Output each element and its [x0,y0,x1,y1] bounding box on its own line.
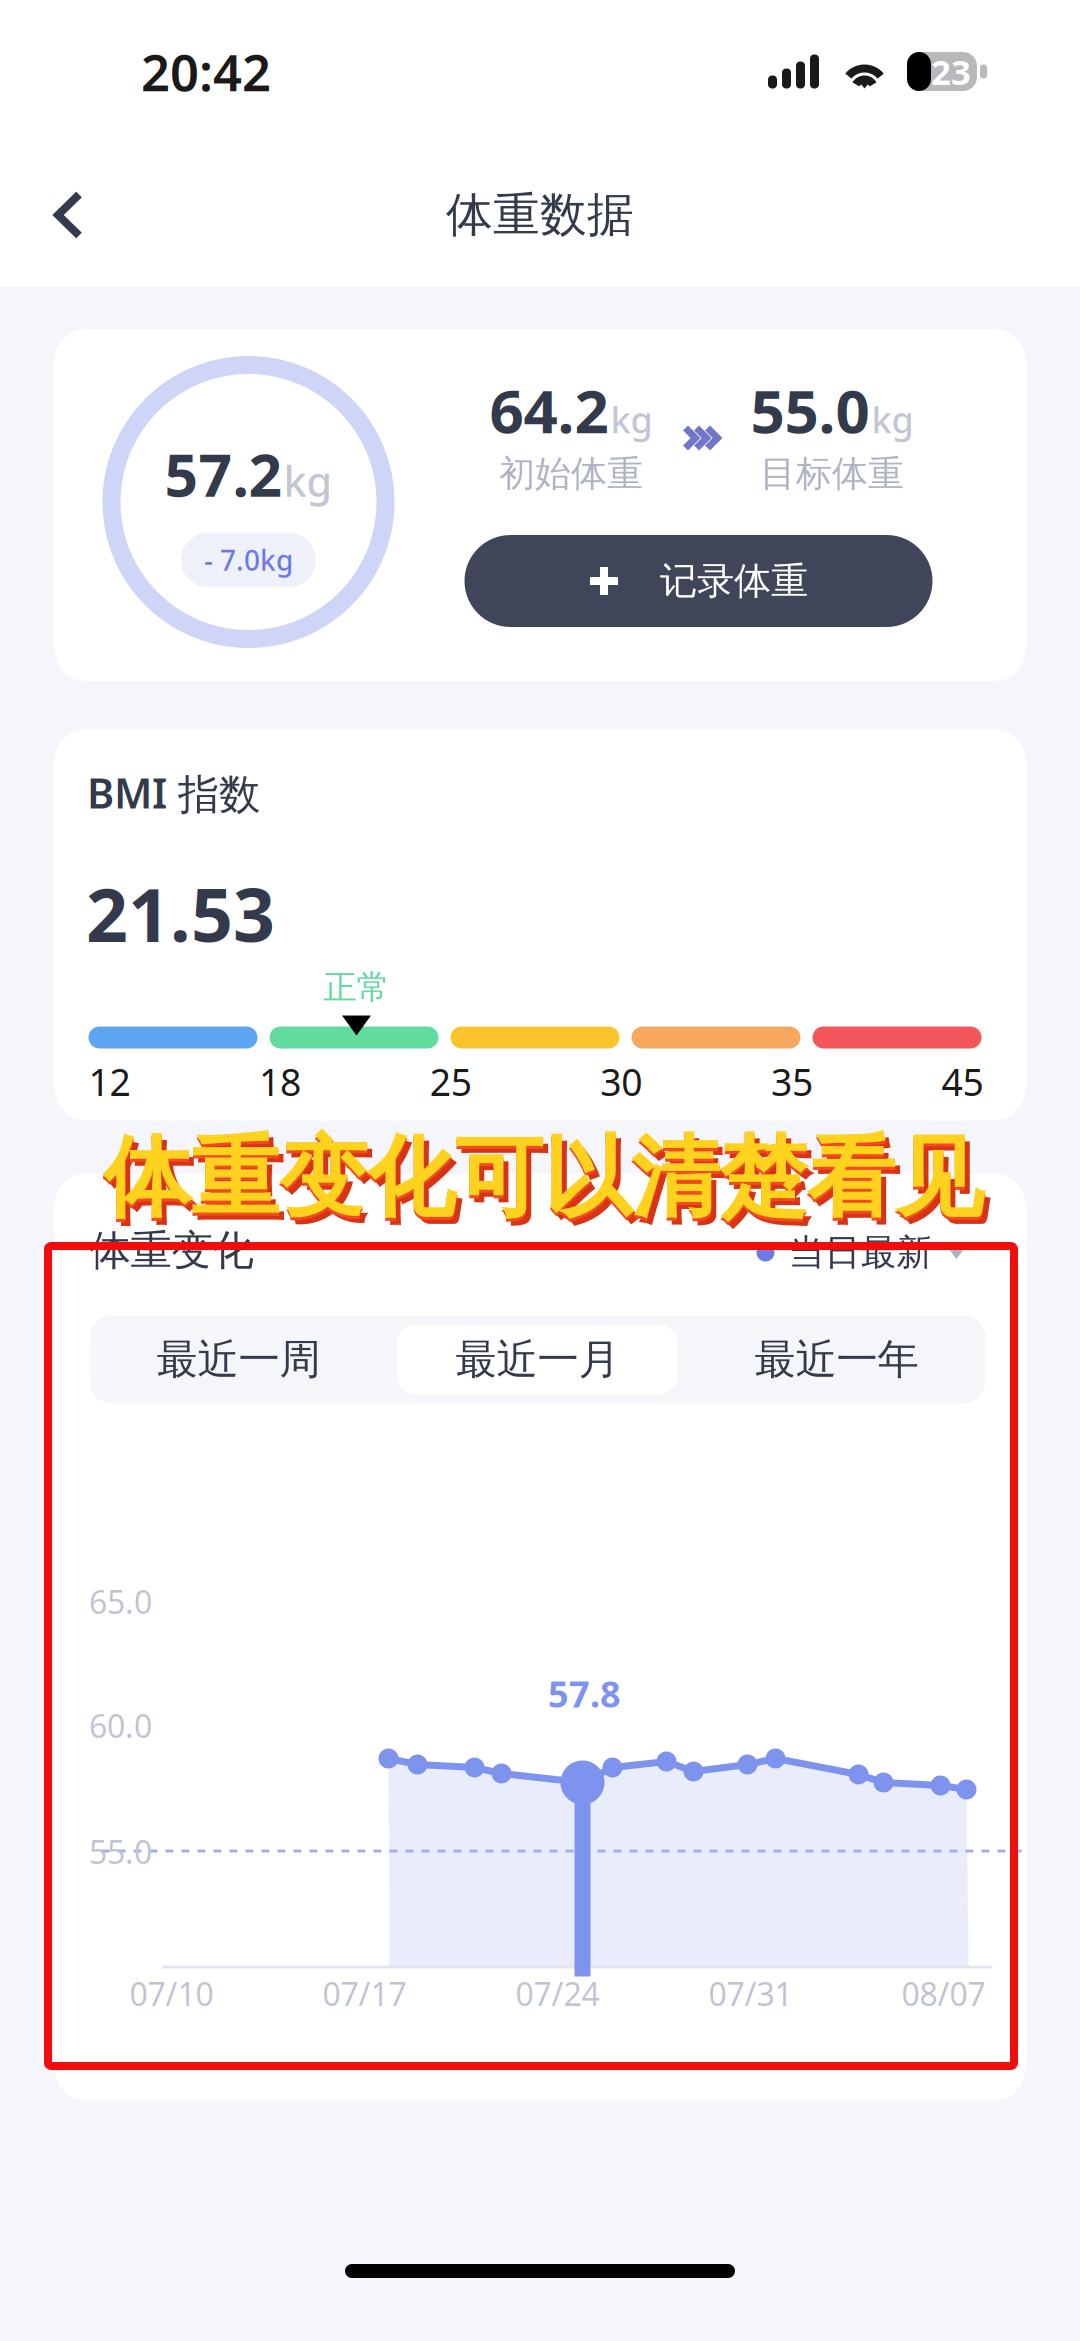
staticText: 07/31 [708,1972,792,2015]
staticText: 12 [88,1057,130,1106]
staticText: 60.0 [89,1704,152,1747]
staticText: 21.53 [86,865,275,962]
staticText: 25 [430,1057,472,1106]
staticText: 64.2 [489,370,608,450]
button[interactable]: 记录体重 [464,535,932,627]
staticText: 体重变化可以清楚看见 [103,1127,983,1235]
staticText: 最近一月 [455,1334,619,1385]
staticText: - 7.0kg [204,541,293,579]
staticText: 正常 [323,967,389,1008]
staticText: 23 [931,48,971,94]
staticText: 07/17 [322,1972,406,2015]
staticText: kg [283,453,332,508]
staticText: kg [610,395,652,443]
staticText: 57.8 [548,1670,621,1717]
staticText: 18 [259,1057,301,1106]
staticText: 55.0 [89,1830,152,1873]
staticText: BMI 指数 [87,765,260,820]
button[interactable]: 当日最新 [756,1230,966,1275]
staticText: kg [871,395,913,443]
staticText: 体重变化可以清楚看见 [108,1131,988,1239]
staticText: 20:42 [141,38,271,105]
staticText: 目标体重 [760,452,904,496]
staticText: 30 [600,1057,642,1106]
button[interactable]: 返回 [0,153,139,276]
staticText: 最近一年 [754,1334,918,1385]
staticText: 55.0 [750,370,869,450]
staticText: 65.0 [89,1580,152,1623]
staticText: 初始体重 [499,452,643,496]
staticText: 体重变化可以清楚看见 [103,1124,983,1232]
staticText: 07/10 [129,1972,213,2015]
staticText: 当日最新 [788,1230,932,1275]
staticText: 57.2 [164,435,282,513]
button[interactable]: 最近一年 [687,1315,985,1403]
staticText: 45 [941,1057,983,1106]
staticText: 35 [771,1057,813,1106]
staticText: 08/07 [901,1972,985,2015]
staticText: 体重变化 [89,1225,253,1276]
staticText: 体重数据 [446,186,634,244]
button[interactable]: 最近一周 [89,1315,387,1403]
button[interactable]: 最近一月 [387,1315,687,1403]
staticText: 最近一周 [156,1334,320,1385]
staticText: 07/24 [515,1972,599,2015]
staticText: 记录体重 [660,558,808,604]
